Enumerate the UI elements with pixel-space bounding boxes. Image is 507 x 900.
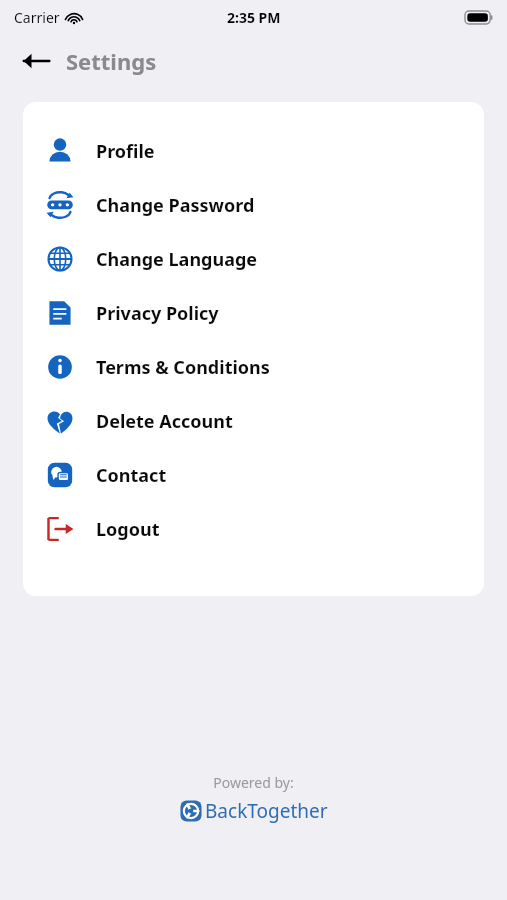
staticText: Logout — [96, 517, 160, 542]
staticText: Powered by: — [213, 773, 294, 792]
staticText: Contact — [96, 463, 167, 488]
staticText: 2:35 PM — [227, 8, 281, 27]
staticText: Privacy Policy — [96, 301, 219, 326]
button[interactable]: Change Language — [23, 232, 484, 286]
staticText: Profile — [96, 139, 155, 164]
staticText: Delete Account — [96, 409, 233, 434]
staticText: Carrier — [14, 8, 60, 27]
button[interactable]: Privacy Policy — [23, 286, 484, 340]
staticText: BackTogether — [205, 798, 328, 824]
button[interactable]: Contact — [23, 448, 484, 502]
button[interactable]: Terms & Conditions — [23, 340, 484, 394]
button[interactable]: Back — [14, 39, 58, 83]
staticText: Change Password — [96, 193, 255, 218]
button[interactable]: Change Password — [23, 178, 484, 232]
button[interactable]: Delete Account — [23, 394, 484, 448]
staticText: Settings — [66, 46, 157, 76]
button[interactable]: Profile — [23, 124, 484, 178]
staticText: Change Language — [96, 247, 258, 272]
button[interactable]: Logout — [23, 502, 484, 556]
staticText: Terms & Conditions — [96, 355, 270, 380]
